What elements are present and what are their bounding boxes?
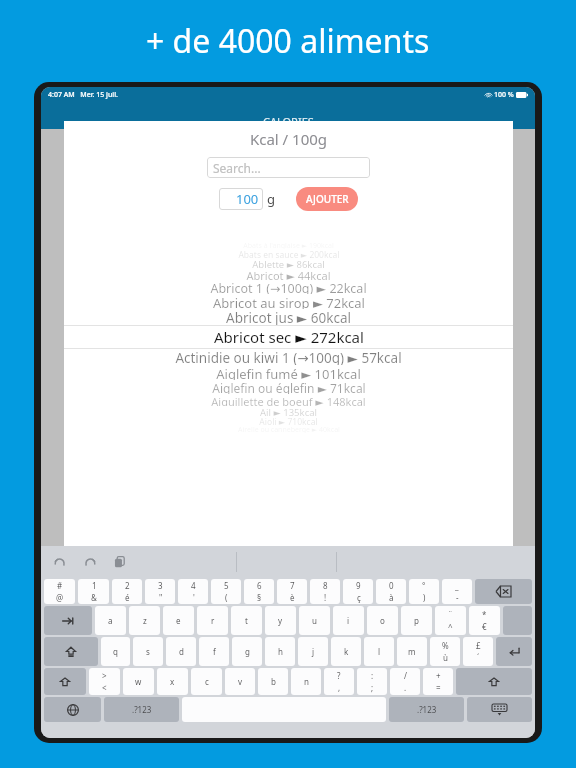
button[interactable]: > [89,668,120,695]
staticText: ^ [448,621,453,632]
button[interactable]: d [166,637,196,666]
button[interactable]: Abricot sec ► 272kcal [64,325,513,349]
button[interactable]: Return [496,637,532,666]
button[interactable]: o [367,606,398,635]
button[interactable]: m [397,637,427,666]
staticText: ! [324,592,327,603]
button[interactable]: t [231,606,262,635]
button[interactable]: 3 [145,579,175,604]
button[interactable]: _ [442,579,472,604]
button[interactable]: q [101,637,130,666]
staticText: ? [337,670,341,681]
button[interactable]: j [298,637,328,666]
button[interactable]: # [44,579,75,604]
button[interactable]: Shift [456,668,532,695]
button[interactable]: Aiguillette de boeuf ► 148kcal [64,394,513,406]
button[interactable]: Ail ► 135kcal [64,406,513,416]
button[interactable]: Undo [51,553,69,571]
staticText: n [304,676,309,687]
staticText: g [245,646,250,657]
button[interactable]: 100 [219,188,263,210]
button[interactable]: Abats en sauce ► 200kcal [64,249,513,258]
staticText: Aioli ► 710kcal [259,416,318,425]
button[interactable]: c [191,668,222,695]
button[interactable]: % [430,637,460,666]
staticText: g [267,190,275,208]
button[interactable]: 8 [310,579,340,604]
button[interactable]: 7 [277,579,307,604]
button[interactable]: z [129,606,160,635]
button[interactable]: Backspace [475,579,532,604]
button[interactable]: Tab [44,606,92,635]
button[interactable]: 0 [376,579,406,604]
button[interactable]: p [401,606,432,635]
staticText: € [482,621,487,632]
button[interactable]: Globe [44,697,101,722]
staticText: 0 [389,580,394,591]
button[interactable]: ¨ [435,606,466,635]
staticText: q [113,646,118,657]
button[interactable]: l [364,637,394,666]
staticText: r [211,615,215,626]
button[interactable]: 5 [211,579,241,604]
button[interactable]: h [265,637,295,666]
button[interactable]: 6 [244,579,274,604]
button[interactable]: Abricot jus ► 60kcal [64,309,513,325]
button[interactable]: .?123 [104,697,179,722]
button[interactable]: Hide keyboard [467,697,532,722]
button[interactable]: Actinidie ou kiwi 1 (→100g) ► 57kcal [64,349,513,365]
button[interactable]: Caps lock [44,637,98,666]
button[interactable]: Paste [111,553,129,571]
button[interactable]: AJOUTER [296,187,358,211]
button[interactable]: Shift [44,668,86,695]
button[interactable]: Ablette ► 86kcal [64,258,513,268]
button[interactable]: w [123,668,154,695]
button[interactable]: y [265,606,296,635]
button[interactable]: * [469,606,500,635]
staticText: Abricot ► 44kcal [246,268,331,280]
button[interactable]: f [199,637,229,666]
button[interactable]: + [423,668,453,695]
staticText: à [389,592,394,603]
staticText: Ail ► 135kcal [260,406,317,416]
button[interactable]: 1 [78,579,109,604]
button[interactable]: u [299,606,330,635]
button[interactable]: i [333,606,364,635]
button[interactable]: e [163,606,194,635]
button[interactable]: Aiglefin fumé ► 101kcal [64,365,513,380]
button[interactable]: Aiglefin ou églefin ► 71kcal [64,380,513,394]
button[interactable]: ? [324,668,354,695]
button[interactable]: .?123 [389,697,464,722]
button[interactable]: k [331,637,361,666]
button[interactable]: Abricot ► 44kcal [64,268,513,280]
staticText: p [414,615,419,626]
button[interactable]: ° [409,579,439,604]
button[interactable]: b [258,668,288,695]
button[interactable]: : [357,668,387,695]
staticText: u [312,615,317,626]
button[interactable]: 2 [112,579,142,604]
button[interactable]: Abricot 1 (→100g) ► 22kcal [64,280,513,294]
button[interactable]: v [225,668,255,695]
button[interactable]: x [157,668,188,695]
button[interactable]: r [197,606,228,635]
button[interactable]: / [390,668,420,695]
button[interactable]: Redo [81,553,99,571]
button[interactable]: Abricot au sirop ► 72kcal [64,294,513,309]
staticText: a [108,615,113,626]
staticText: 100 [236,190,259,208]
button[interactable]: 9 [343,579,373,604]
button[interactable]: a [95,606,126,635]
button[interactable]: n [291,668,321,695]
button[interactable]: £ [463,637,493,666]
staticText: h [278,646,283,657]
button[interactable]: s [133,637,163,666]
button[interactable]: Search... [207,157,370,178]
button[interactable]: 4 [178,579,208,604]
button[interactable]: g [232,637,262,666]
